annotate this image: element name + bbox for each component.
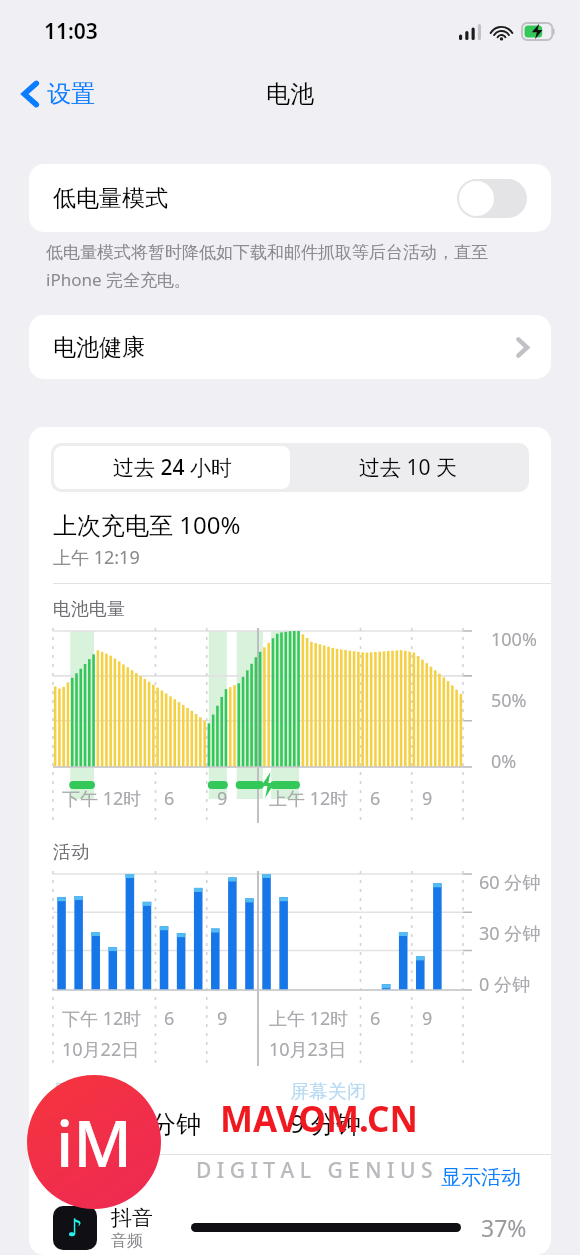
staticText: 6 — [370, 786, 381, 811]
staticText: 低电量模式将暂时降低如下载和邮件抓取等后台活动，直至 iPhone 完全充电。 — [46, 240, 534, 291]
staticText: 低电量模式 — [53, 184, 457, 213]
staticText: 6 — [370, 1006, 381, 1031]
staticText: 屏幕关闭 — [290, 1080, 366, 1104]
staticText: 10月22日 — [62, 1037, 140, 1062]
staticText: 抖音 — [111, 1205, 153, 1231]
staticText: 5 小时 9 分钟 — [53, 1106, 202, 1140]
staticText: 音频 — [111, 1231, 143, 1251]
button[interactable]: 显示活动 — [435, 1155, 527, 1200]
staticText: 0 分钟 — [479, 972, 530, 994]
staticText: 下午 12时 — [62, 786, 142, 811]
staticText: ♪ — [67, 1214, 83, 1242]
staticText: 下午 12时 — [62, 1006, 142, 1031]
staticText: 10月23日 — [269, 1037, 347, 1062]
staticText: 100% — [491, 627, 537, 649]
button[interactable]: Low Power Mode toggle — [457, 179, 527, 218]
button[interactable]: 过去 10 天 — [290, 446, 526, 489]
staticText: 活动 — [53, 841, 89, 864]
staticText: 显示活动 — [441, 1165, 521, 1190]
staticText: 屏幕开启 — [53, 1080, 129, 1104]
staticText: 9 分钟 — [290, 1106, 361, 1140]
button[interactable]: 过去 24 小时 — [54, 446, 290, 489]
staticText: 9 — [217, 786, 228, 811]
staticText: D I G I T A L G E N I U S — [196, 1156, 433, 1185]
staticText: 设置 — [47, 79, 95, 109]
staticText: 11:03 — [44, 17, 98, 46]
staticText: 上午 12时 — [269, 1006, 349, 1031]
staticText: 9 — [422, 786, 433, 811]
staticText: 电池健康 — [53, 333, 516, 362]
button[interactable]: 电池健康 — [29, 315, 551, 379]
staticText: 60 分钟 — [479, 870, 541, 892]
staticText: 电池 — [266, 79, 314, 109]
staticText: iM — [56, 1099, 133, 1186]
staticText: 6 — [164, 786, 175, 811]
staticText: 6 — [164, 1006, 175, 1031]
button[interactable]: 低电量模式 — [29, 164, 551, 232]
staticText: 9 — [422, 1006, 433, 1031]
staticText: 上午 12时 — [269, 786, 349, 811]
staticText: 0% — [491, 749, 517, 771]
staticText: 37% — [481, 1212, 527, 1243]
button[interactable]: 设置 — [14, 73, 103, 115]
button[interactable]: ♪ — [29, 1200, 551, 1255]
staticText: MAVOM.CN — [220, 1095, 418, 1143]
staticText: 过去 24 小时 — [113, 453, 232, 482]
staticText: 30 分钟 — [479, 921, 541, 943]
staticText: 50% — [491, 688, 527, 710]
staticText: 电池电量 — [53, 598, 125, 621]
staticText: 9 — [217, 1006, 228, 1031]
staticText: 上午 12:19 — [53, 545, 140, 570]
staticText: 过去 10 天 — [359, 453, 457, 482]
staticText: 上次充电至 100% — [53, 508, 241, 541]
